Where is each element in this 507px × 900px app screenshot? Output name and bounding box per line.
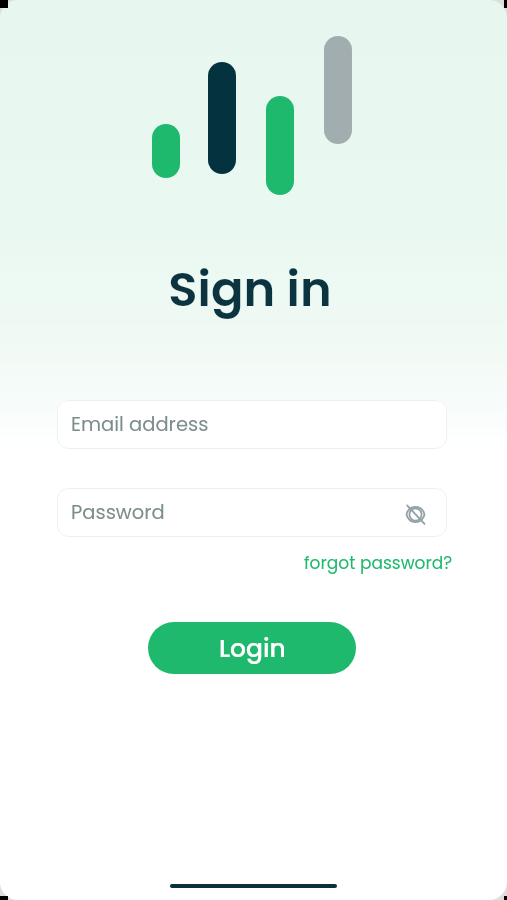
button[interactable]: Show password — [397, 496, 433, 532]
button[interactable]: Login — [148, 622, 356, 674]
button[interactable]: forgot password? — [304, 551, 453, 575]
staticText: forgot password? — [304, 551, 453, 575]
button[interactable]: Email address — [57, 400, 447, 449]
staticText: Sign in — [168, 256, 332, 323]
staticText: Email address — [71, 411, 209, 438]
staticText: Password — [71, 499, 165, 526]
button[interactable]: Password — [57, 488, 447, 537]
staticText: Login — [219, 631, 286, 666]
